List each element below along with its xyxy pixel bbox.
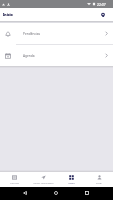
button[interactable]: Enviar Mensagem xyxy=(29,175,57,184)
staticText: Agenda xyxy=(23,54,35,58)
staticText: Pendências xyxy=(23,32,41,36)
button[interactable]: Home xyxy=(52,189,60,197)
staticText: Notícias xyxy=(10,181,19,184)
button[interactable]: Recents xyxy=(83,189,91,197)
staticText: Inicio xyxy=(3,12,13,17)
button[interactable]: Agenda xyxy=(0,45,113,66)
button[interactable]: Perfil xyxy=(85,175,113,184)
staticText: Perfil xyxy=(96,181,102,184)
button[interactable]: Menu xyxy=(57,175,85,184)
staticText: Inicio xyxy=(3,12,13,17)
staticText: 22:07 xyxy=(97,2,106,7)
button[interactable]: Pendências xyxy=(0,23,113,44)
staticText: Menu xyxy=(68,181,75,184)
button[interactable]: Back xyxy=(21,189,29,197)
staticText: Enviar Mensagem xyxy=(33,181,54,184)
button[interactable]: Account xyxy=(98,10,107,19)
button[interactable]: Notícias xyxy=(0,175,29,184)
